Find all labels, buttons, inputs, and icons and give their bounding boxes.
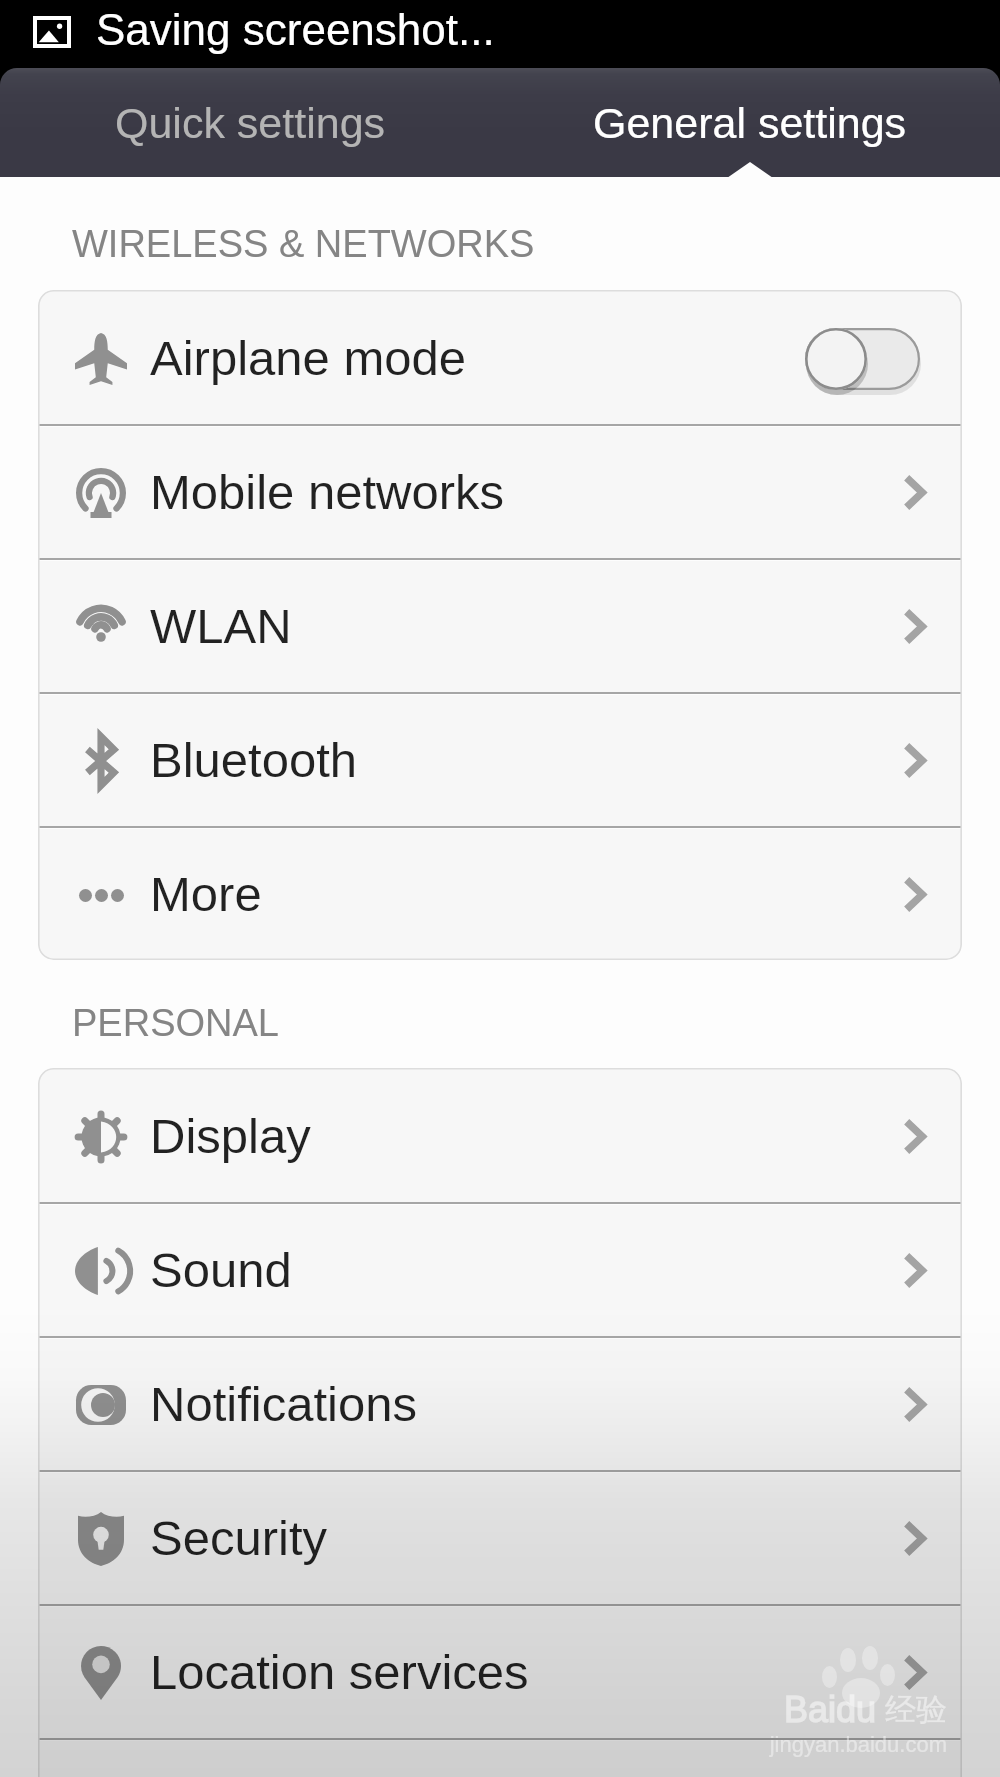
staticText: Sound xyxy=(150,1243,292,1298)
button[interactable]: Mobile networks xyxy=(38,427,962,558)
staticText: Quick settings xyxy=(115,99,386,147)
button[interactable]: Display xyxy=(38,1071,962,1202)
button[interactable]: WLAN xyxy=(38,561,962,692)
staticText: Mobile networks xyxy=(150,465,505,520)
staticText: WIRELESS & NETWORKS xyxy=(72,223,535,265)
staticText: Location services xyxy=(150,1645,529,1700)
staticText: PERSONAL xyxy=(72,1002,279,1044)
staticText: Saving screenshot... xyxy=(96,5,495,54)
button[interactable]: Quick settings xyxy=(0,68,500,177)
button[interactable]: Airplane mode xyxy=(38,293,962,424)
button[interactable]: Location services xyxy=(38,1607,962,1738)
button[interactable]: Sound xyxy=(38,1205,962,1336)
staticText: Display xyxy=(150,1109,311,1164)
staticText: More xyxy=(150,867,262,922)
staticText: WLAN xyxy=(150,599,292,654)
staticText: Airplane mode xyxy=(150,331,466,386)
staticText: General settings xyxy=(593,99,907,147)
button[interactable]: Accounts xyxy=(38,1741,962,1777)
button[interactable]: Bluetooth xyxy=(38,695,962,826)
staticText: Bluetooth xyxy=(150,733,358,788)
button[interactable]: General settings xyxy=(500,68,1000,177)
staticText: jingyan.baidu.com xyxy=(769,1732,947,1757)
button[interactable]: Security xyxy=(38,1473,962,1604)
staticText: Notifications xyxy=(150,1377,417,1432)
staticText: Security xyxy=(150,1511,328,1566)
staticText: 经验 xyxy=(885,1690,947,1729)
button[interactable]: More xyxy=(38,829,962,960)
staticText: Baidu xyxy=(784,1689,877,1729)
button[interactable]: Notifications xyxy=(38,1339,962,1470)
